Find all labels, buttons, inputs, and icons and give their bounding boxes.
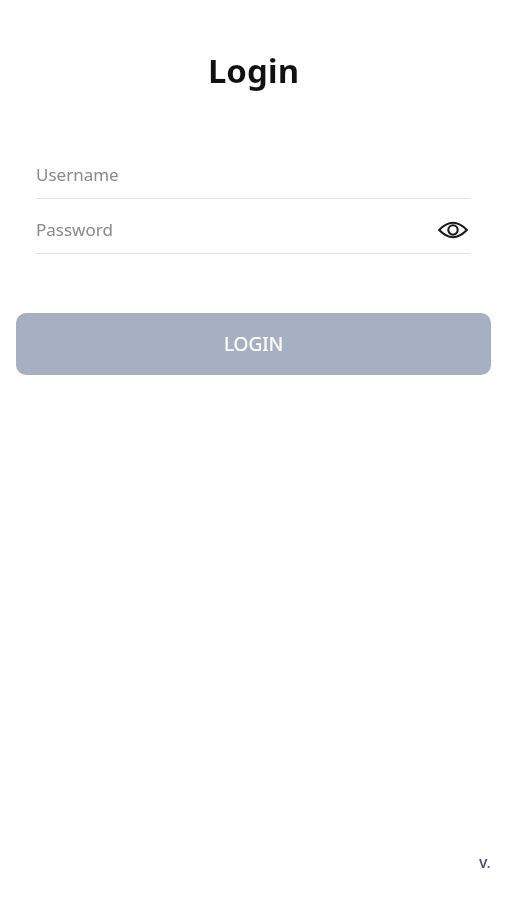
staticText: LOGIN (224, 331, 284, 357)
staticText: Password (36, 218, 436, 241)
button[interactable]: Show password (436, 213, 470, 247)
staticText: Username (36, 163, 119, 186)
button[interactable]: Password (36, 206, 470, 253)
staticText: V. (479, 854, 491, 872)
button[interactable]: Username (36, 151, 470, 199)
staticText: Login (0, 48, 507, 93)
button[interactable]: LOGIN (16, 313, 491, 375)
